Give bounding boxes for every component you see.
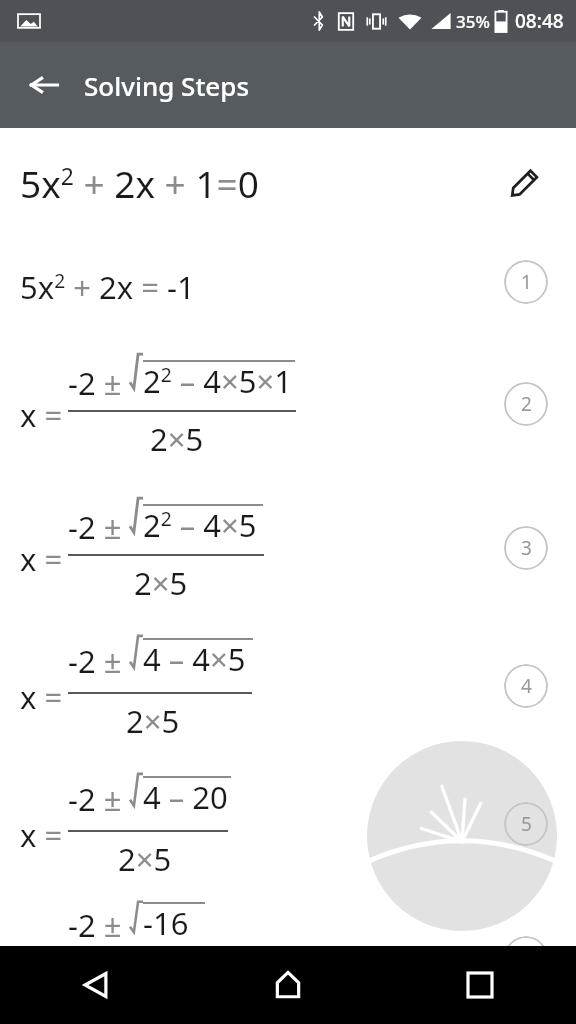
staticText: x = <box>20 814 63 856</box>
staticText: 4 <box>521 673 532 699</box>
staticText: 3 <box>521 535 532 561</box>
staticText: -2 ± <box>68 506 130 548</box>
staticText: 35% <box>456 10 490 33</box>
button[interactable]: x = <box>0 348 576 486</box>
staticText: Solving Steps <box>84 68 250 103</box>
button[interactable]: x = <box>0 630 576 768</box>
button[interactable]: x = <box>0 492 576 630</box>
button[interactable]: Home <box>192 946 384 1024</box>
staticText: -2 ± <box>68 904 130 946</box>
staticText: 2×5 <box>118 838 172 880</box>
staticText: 2×5 <box>126 700 180 742</box>
button[interactable]: x = <box>0 768 576 906</box>
button[interactable]: 1 <box>504 260 548 304</box>
button[interactable]: 4 <box>504 664 548 708</box>
button[interactable]: Recent apps <box>384 946 576 1024</box>
staticText: 2×5 <box>150 418 204 460</box>
button[interactable]: 5x2 + 2x = -1 <box>0 252 576 324</box>
staticText: 4 – 4×5 <box>143 638 246 680</box>
button[interactable]: Back <box>16 57 72 113</box>
staticText: 1 <box>521 269 532 295</box>
staticText: 22 – 4×5×1 <box>143 360 293 402</box>
staticText: 6 <box>521 945 532 971</box>
staticText: 5 <box>521 811 532 837</box>
staticText: -2 ± <box>68 640 130 682</box>
staticText: x = <box>20 538 63 580</box>
staticText: 22 – 4×5 <box>143 504 257 546</box>
button[interactable]: Back <box>0 946 192 1024</box>
button[interactable]: 5 <box>504 802 548 846</box>
staticText: x = <box>20 394 63 436</box>
staticText: x = <box>20 676 63 718</box>
staticText: 2×5 <box>134 562 188 604</box>
staticText: -16 <box>143 902 189 944</box>
staticText: -2 ± <box>68 362 130 404</box>
staticText: 08:48 <box>515 8 564 34</box>
staticText: 5x2 + 2x + 1=0 <box>20 158 259 208</box>
button[interactable]: 6 <box>504 936 548 980</box>
button[interactable]: Edit equation <box>498 153 554 209</box>
button[interactable]: 3 <box>504 526 548 570</box>
button[interactable]: 2 <box>504 382 548 426</box>
button[interactable]: -2 ± <box>0 900 576 946</box>
staticText: 5x2 + 2x = -1 <box>20 266 195 308</box>
staticText: -2 ± <box>68 778 130 820</box>
staticText: 2 <box>521 391 532 417</box>
staticText: 4 – 20 <box>143 776 228 818</box>
